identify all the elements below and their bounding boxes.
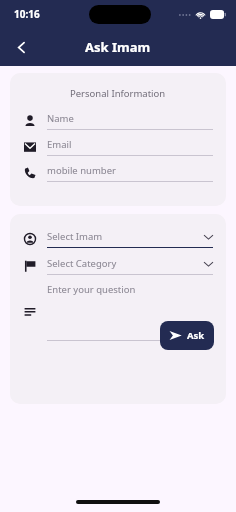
- staticText: 10:16: [14, 7, 40, 21]
- staticText: Enter your question: [47, 283, 136, 296]
- staticText: Name: [47, 112, 74, 125]
- staticText: Select Imam: [47, 230, 103, 243]
- button[interactable]: Select Category: [47, 257, 213, 275]
- staticText: Ask: [187, 329, 205, 342]
- staticText: Email: [47, 138, 72, 151]
- button[interactable]: mobile number: [47, 164, 213, 182]
- staticText: mobile number: [47, 164, 116, 177]
- button[interactable]: Back: [4, 30, 38, 64]
- button[interactable]: Ask: [160, 321, 214, 350]
- button[interactable]: Select Imam: [47, 230, 213, 248]
- staticText: Personal Information: [70, 87, 166, 100]
- staticText: Ask Imam: [85, 38, 151, 56]
- staticText: Select Category: [47, 257, 117, 270]
- button[interactable]: Name: [47, 112, 213, 130]
- button[interactable]: Email: [47, 138, 213, 156]
